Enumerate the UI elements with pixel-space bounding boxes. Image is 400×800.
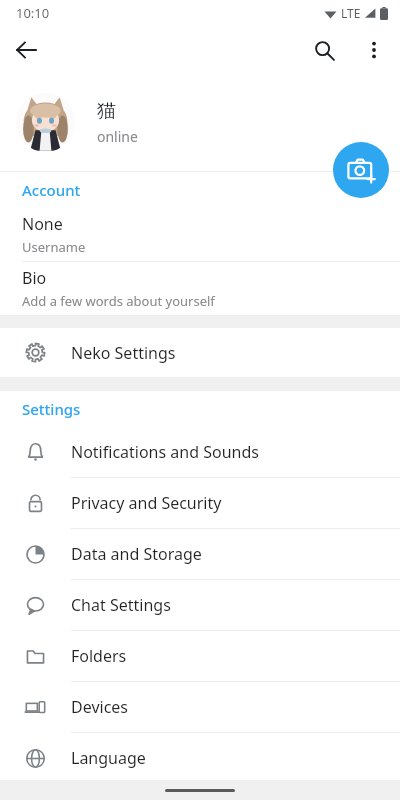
- button[interactable]: Language: [0, 733, 400, 783]
- staticText: Settings: [22, 399, 81, 419]
- button[interactable]: Back: [6, 30, 46, 70]
- staticText: 10:10: [16, 4, 50, 22]
- staticText: Folders: [71, 645, 127, 667]
- staticText: None: [22, 213, 63, 235]
- button[interactable]: Folders: [0, 631, 400, 681]
- staticText: Neko Settings: [71, 342, 176, 364]
- button[interactable]: 猫: [0, 74, 400, 171]
- staticText: online: [97, 127, 138, 146]
- staticText: Account: [22, 180, 81, 200]
- staticText: Language: [71, 747, 146, 769]
- button[interactable]: Search: [304, 30, 344, 70]
- button[interactable]: Data and Storage: [0, 529, 400, 579]
- button[interactable]: Bio: [0, 262, 400, 315]
- staticText: Add a few words about yourself: [22, 292, 215, 310]
- staticText: Chat Settings: [71, 594, 171, 616]
- button[interactable]: Set profile photo: [333, 142, 389, 198]
- staticText: LTE: [341, 5, 361, 21]
- staticText: Notifications and Sounds: [71, 441, 259, 463]
- button[interactable]: Notifications and Sounds: [0, 427, 400, 477]
- button[interactable]: Privacy and Security: [0, 478, 400, 528]
- button[interactable]: Neko Settings: [0, 328, 400, 377]
- staticText: Privacy and Security: [71, 492, 222, 514]
- button[interactable]: Devices: [0, 682, 400, 732]
- button[interactable]: More options: [354, 30, 394, 70]
- staticText: Bio: [22, 267, 47, 289]
- staticText: Username: [22, 238, 86, 256]
- staticText: Data and Storage: [71, 543, 202, 565]
- button[interactable]: Chat Settings: [0, 580, 400, 630]
- staticText: Devices: [71, 696, 129, 718]
- button[interactable]: None: [0, 208, 400, 261]
- staticText: 猫: [97, 99, 116, 123]
